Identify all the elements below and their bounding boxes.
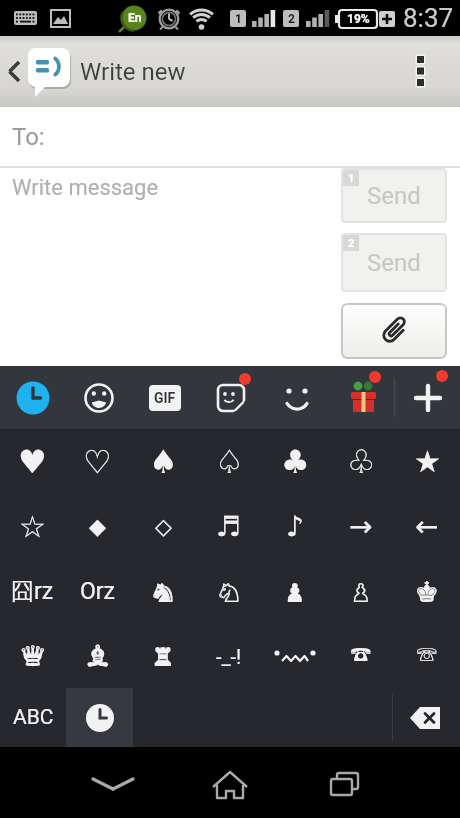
staticText: ☏: [416, 641, 438, 671]
button[interactable]: ABC: [0, 688, 66, 747]
staticText: 1: [348, 172, 355, 185]
staticText: Send: [367, 182, 421, 210]
staticText: 1: [235, 12, 242, 26]
button[interactable]: 2: [341, 233, 447, 292]
staticText: ♪: [286, 510, 304, 543]
button[interactable]: ♠: [130, 429, 196, 494]
staticText: ☎: [350, 641, 372, 671]
button[interactable]: Orz: [65, 559, 130, 624]
button[interactable]: ☏: [394, 624, 460, 688]
button[interactable]: GIF: [149, 385, 181, 411]
button[interactable]: -_-!: [196, 624, 262, 688]
staticText: ☆: [19, 509, 46, 544]
button[interactable]: ☎: [328, 624, 394, 688]
staticText: ABC: [13, 705, 54, 730]
staticText: ♘: [216, 576, 242, 608]
button[interactable]: ♘: [196, 559, 262, 624]
staticText: ♥: [18, 443, 47, 480]
staticText: To:: [12, 123, 45, 151]
button[interactable]: ♬: [196, 494, 262, 559]
button[interactable]: ♟: [262, 559, 328, 624]
button[interactable]: 囧rz: [0, 559, 65, 624]
button[interactable]: ◆: [65, 494, 130, 559]
button[interactable]: [66, 688, 133, 747]
staticText: ♞: [150, 576, 176, 608]
staticText: Write message: [12, 175, 159, 201]
staticText: 19%: [347, 12, 370, 26]
staticText: ★: [414, 444, 441, 479]
staticText: ♜: [150, 640, 176, 672]
button[interactable]: 1: [341, 168, 447, 223]
button[interactable]: [73, 759, 153, 809]
button[interactable]: ←: [394, 494, 460, 559]
staticText: →: [349, 510, 373, 543]
staticText: ♝: [85, 640, 111, 672]
staticText: ♛: [20, 640, 46, 672]
button[interactable]: ♚: [394, 559, 460, 624]
staticText: ←: [415, 510, 439, 543]
staticText: ♟: [282, 576, 308, 608]
button[interactable]: ☆: [0, 494, 65, 559]
button[interactable]: ♞: [130, 559, 196, 624]
button[interactable]: ♪: [262, 494, 328, 559]
staticText: ♣: [281, 443, 310, 480]
button[interactable]: [392, 688, 460, 747]
button[interactable]: ★: [394, 429, 460, 494]
staticText: Write new: [80, 58, 186, 86]
staticText: 2: [348, 237, 355, 250]
button[interactable]: Write new: [0, 36, 460, 107]
staticText: ♤: [215, 443, 244, 480]
staticText: ◇: [155, 514, 172, 540]
staticText: ♧: [347, 443, 376, 480]
staticText: GIF: [154, 390, 176, 406]
staticText: 8:37: [403, 3, 454, 33]
button[interactable]: ♡: [65, 429, 130, 494]
staticText: 2: [288, 12, 295, 26]
button[interactable]: [190, 759, 270, 809]
button[interactable]: To:: [0, 107, 460, 168]
staticText: ♙: [348, 576, 374, 608]
button[interactable]: ♛: [0, 624, 65, 688]
button[interactable]: →: [328, 494, 394, 559]
staticText: En: [128, 11, 142, 25]
staticText: ♠: [149, 443, 178, 480]
staticText: ♬: [216, 510, 242, 543]
staticText: Send: [367, 249, 421, 277]
button[interactable]: [305, 759, 385, 809]
button[interactable]: ♝: [65, 624, 130, 688]
button[interactable]: ♧: [328, 429, 394, 494]
staticText: Orz: [80, 578, 116, 605]
button[interactable]: ♥: [0, 429, 65, 494]
button[interactable]: ♤: [196, 429, 262, 494]
button[interactable]: ♣: [262, 429, 328, 494]
staticText: 囧rz: [11, 577, 54, 606]
staticText: ♚: [414, 576, 440, 608]
button[interactable]: ♙: [328, 559, 394, 624]
button[interactable]: [341, 303, 447, 359]
button[interactable]: ♜: [130, 624, 196, 688]
button[interactable]: [262, 624, 328, 688]
button[interactable]: ◇: [130, 494, 196, 559]
staticText: -_-!: [216, 645, 242, 668]
staticText: ♡: [83, 443, 112, 480]
staticText: ◆: [89, 514, 106, 540]
